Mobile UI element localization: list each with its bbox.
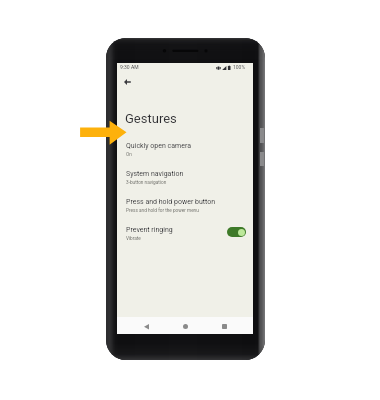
staticText: Vibrate (126, 236, 141, 242)
staticText: Press and hold power button (126, 198, 216, 206)
button[interactable]: Press and hold power button (117, 189, 253, 217)
staticText: Gestures (125, 111, 177, 126)
staticText: 9:30 AM (120, 64, 139, 70)
button[interactable]: Prevent ringing (117, 217, 253, 245)
button[interactable]: Home (177, 318, 193, 334)
staticText: 3-button navigation (126, 180, 167, 186)
staticText: System navigation (126, 170, 184, 178)
button[interactable]: Quickly open camera (117, 133, 253, 161)
staticText: On (126, 152, 132, 158)
staticText: Quickly open camera (126, 142, 191, 150)
button[interactable]: Back (138, 318, 154, 334)
button[interactable]: Navigate up (119, 74, 135, 90)
staticText: Press and hold for the power menu (126, 208, 199, 214)
button[interactable]: Recent apps (216, 318, 232, 334)
button[interactable]: Prevent ringing, on (227, 227, 246, 237)
staticText: 100% (233, 64, 246, 70)
staticText: Prevent ringing (126, 226, 173, 234)
button[interactable]: System navigation (117, 161, 253, 189)
